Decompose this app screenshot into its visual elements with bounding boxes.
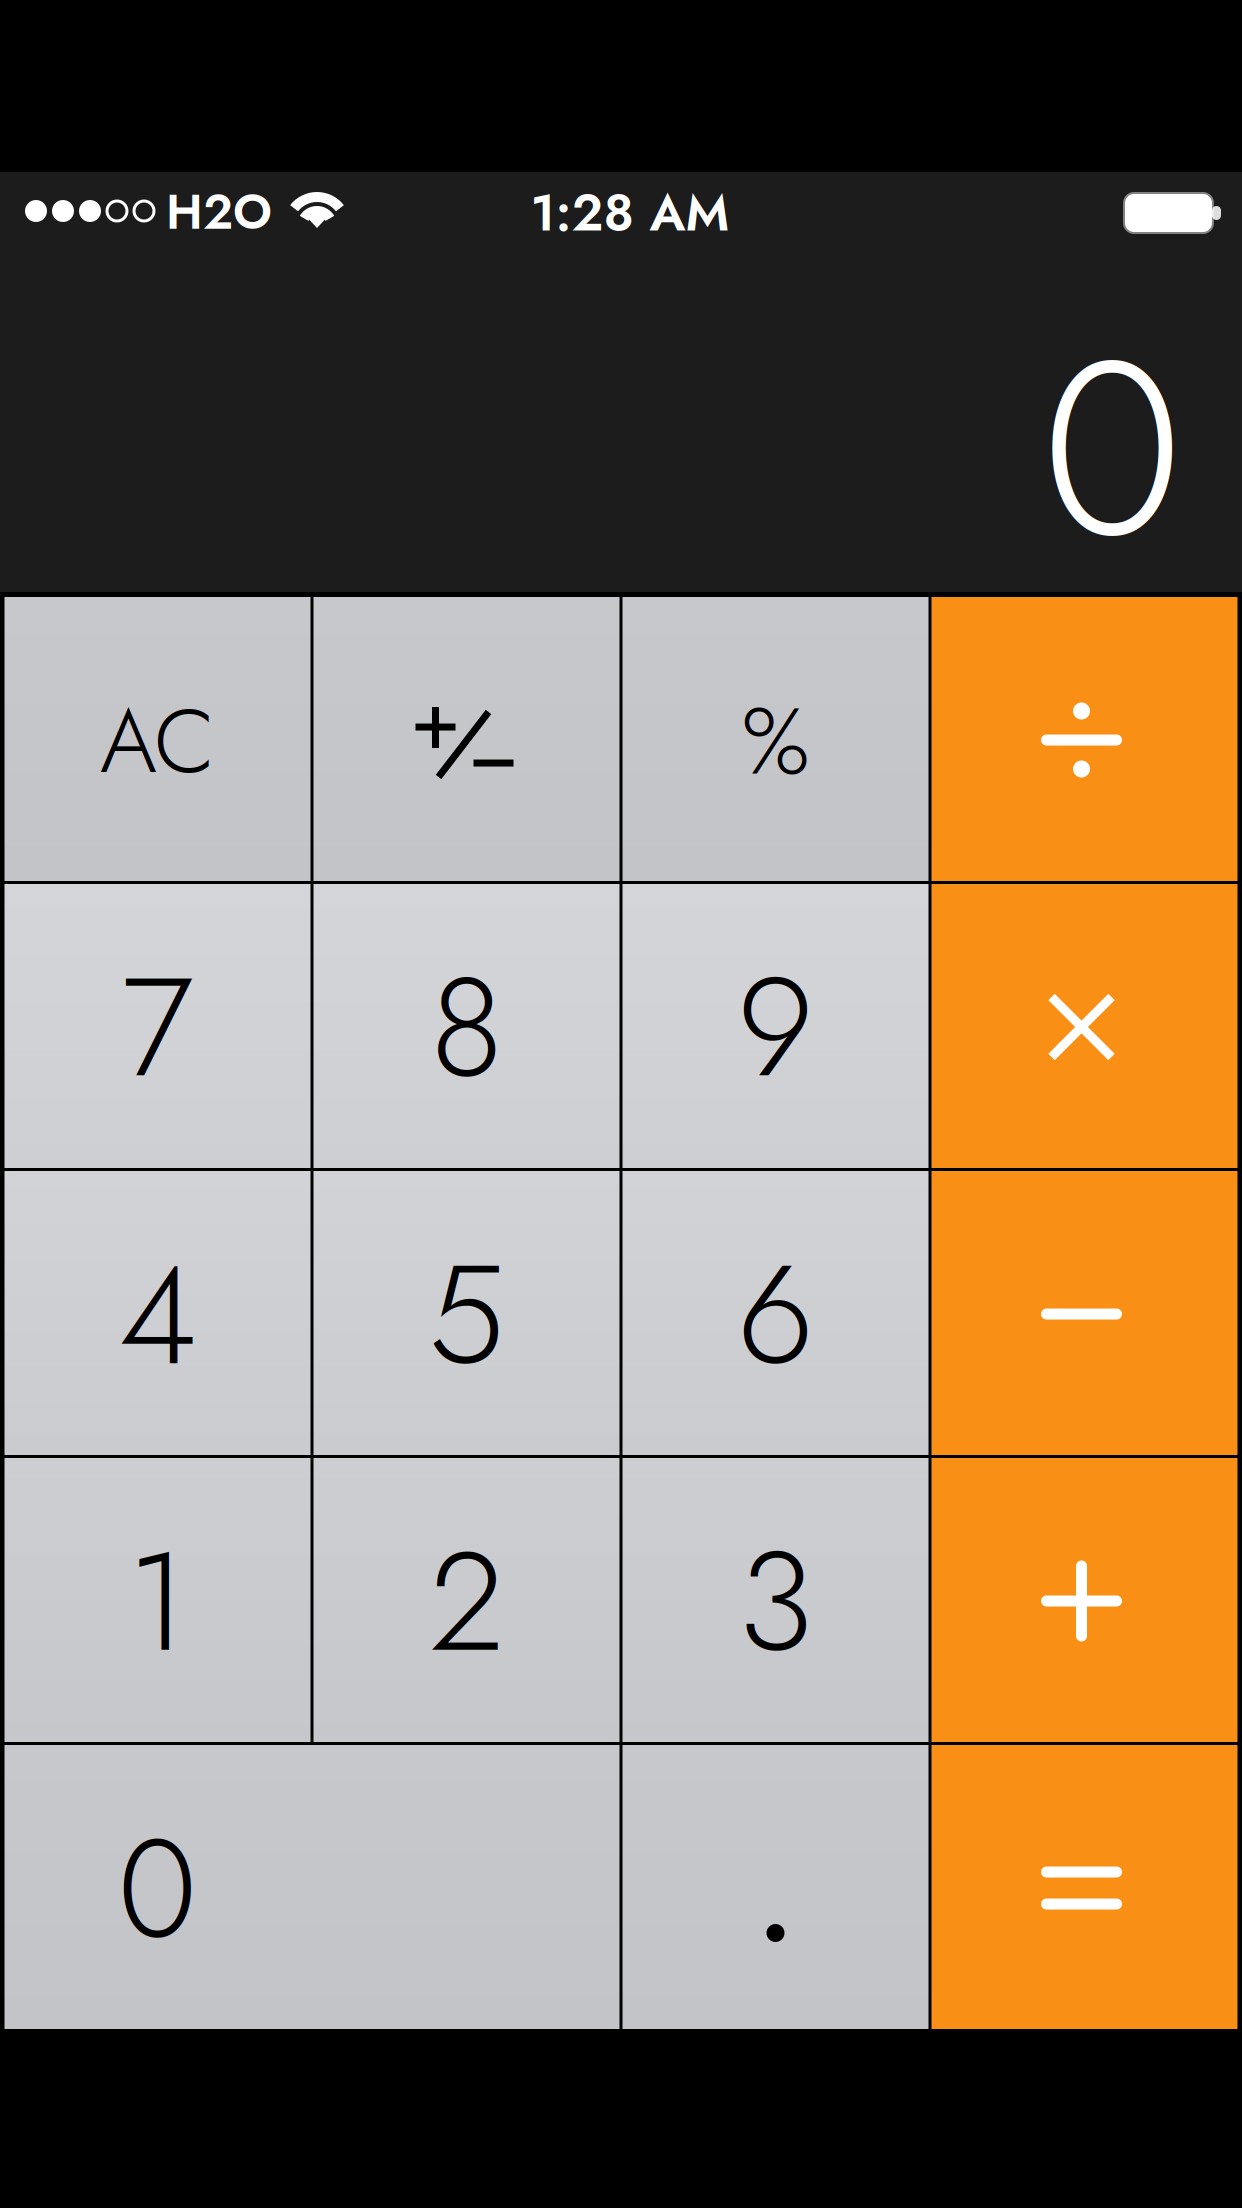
button[interactable]: Divide bbox=[931, 597, 1237, 881]
button[interactable]: All Clear bbox=[4, 597, 310, 881]
button[interactable]: Percent bbox=[622, 597, 928, 881]
button[interactable]: Plus Minus bbox=[313, 597, 619, 881]
button[interactable]: 7 bbox=[4, 884, 310, 1168]
staticText: % bbox=[741, 674, 809, 808]
staticText: 8 bbox=[430, 929, 503, 1127]
button[interactable]: 4 bbox=[4, 1171, 310, 1455]
staticText: 1 bbox=[127, 1503, 187, 1701]
button[interactable]: Multiply bbox=[931, 884, 1237, 1168]
staticText: 7 bbox=[121, 929, 193, 1127]
staticText: 4 bbox=[118, 1216, 196, 1414]
button[interactable]: Plus bbox=[931, 1458, 1237, 1742]
staticText: 6 bbox=[737, 1216, 814, 1414]
staticText: 3 bbox=[738, 1503, 813, 1701]
staticText: H2O bbox=[166, 177, 272, 247]
button[interactable]: 5 bbox=[313, 1171, 619, 1455]
staticText: 0 bbox=[1041, 271, 1183, 626]
button[interactable]: 6 bbox=[622, 1171, 928, 1455]
button[interactable]: Minus bbox=[931, 1171, 1237, 1455]
staticText: 0 bbox=[117, 1790, 197, 1988]
button[interactable]: 1 bbox=[4, 1458, 310, 1742]
button[interactable]: Equals bbox=[931, 1745, 1237, 2029]
button[interactable]: Decimal Point bbox=[622, 1745, 928, 2029]
button[interactable]: 2 bbox=[313, 1458, 619, 1742]
button[interactable]: 3 bbox=[622, 1458, 928, 1742]
staticText: AC bbox=[100, 676, 215, 806]
staticText: 2 bbox=[429, 1503, 504, 1701]
button[interactable]: 9 bbox=[622, 884, 928, 1168]
staticText: 9 bbox=[737, 929, 814, 1127]
staticText: 1:28 AM bbox=[530, 176, 729, 250]
button[interactable]: 0 bbox=[4, 1745, 619, 2029]
staticText: 5 bbox=[428, 1216, 505, 1414]
button[interactable]: 8 bbox=[313, 884, 619, 1168]
